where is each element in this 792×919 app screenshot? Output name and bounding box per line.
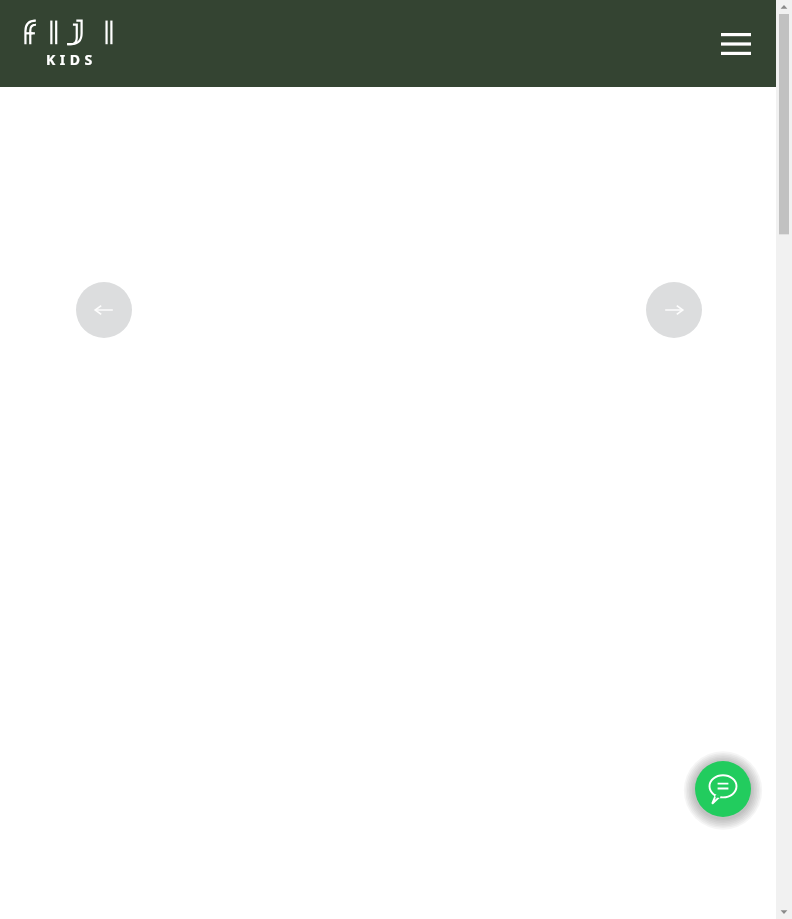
button[interactable]: Previous: [76, 282, 132, 338]
button[interactable]: Open menu: [714, 22, 758, 66]
staticText: KIDS: [46, 50, 97, 69]
button[interactable]: Fiji Kids home: [22, 17, 122, 71]
button[interactable]: Open chat: [695, 761, 751, 817]
button[interactable]: Next: [646, 282, 702, 338]
